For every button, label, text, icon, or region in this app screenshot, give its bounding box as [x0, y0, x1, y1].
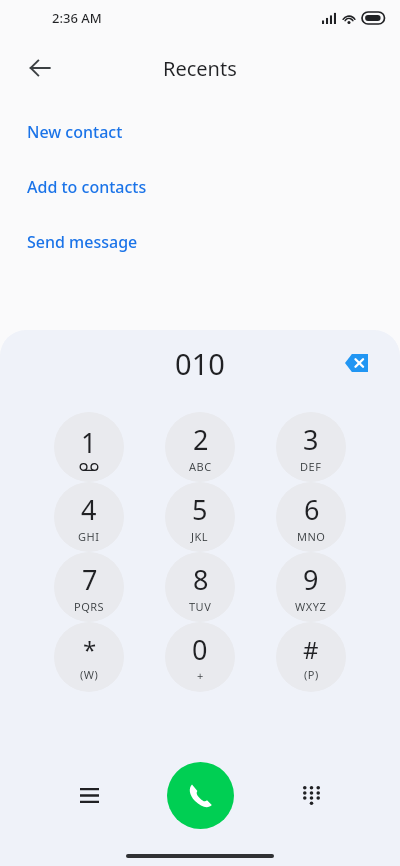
staticText: (P) [304, 667, 319, 682]
button[interactable]: Backspace [334, 341, 378, 385]
button[interactable]: Send message [0, 214, 400, 269]
staticText: 4 [81, 491, 97, 528]
button[interactable]: 8 [165, 552, 235, 622]
staticText: 7 [82, 561, 98, 598]
staticText: Recents [163, 55, 237, 82]
staticText: + [197, 668, 204, 683]
staticText: * [83, 633, 97, 666]
button[interactable]: 7 [54, 552, 124, 622]
staticText: 2 [193, 421, 209, 458]
staticText: 5 [192, 491, 208, 528]
staticText: 8 [193, 561, 209, 598]
staticText: ABC [189, 459, 212, 474]
staticText: GHI [78, 529, 100, 544]
button[interactable]: 0 [165, 622, 235, 692]
button[interactable]: New contact [0, 104, 400, 159]
staticText: Send message [27, 231, 138, 253]
button[interactable]: 1 [54, 412, 124, 482]
staticText: (W) [80, 667, 99, 682]
staticText: 6 [304, 491, 320, 528]
button[interactable]: 2 [165, 412, 235, 482]
button[interactable]: Dialpad [289, 773, 333, 817]
staticText: 9 [303, 561, 319, 598]
staticText: TUV [189, 599, 212, 614]
staticText: JKL [191, 529, 209, 544]
staticText: 2:36 AM [52, 9, 102, 27]
button[interactable]: 4 [54, 482, 124, 552]
staticText: MNO [297, 529, 326, 544]
button[interactable]: Add to contacts [0, 159, 400, 214]
button[interactable]: Back [18, 46, 62, 90]
staticText: 1 [81, 424, 97, 461]
staticText: WXYZ [295, 599, 327, 614]
staticText: PQRS [74, 599, 105, 614]
button[interactable]: 5 [165, 482, 235, 552]
staticText: New contact [27, 121, 123, 143]
staticText: DEF [300, 459, 322, 474]
button[interactable]: Menu [67, 773, 111, 817]
button[interactable]: 6 [276, 482, 346, 552]
button[interactable]: Call [167, 762, 234, 829]
button[interactable]: * [54, 622, 124, 692]
staticText: Add to contacts [27, 176, 147, 198]
staticText: 0 [192, 631, 208, 668]
staticText: 3 [303, 421, 319, 458]
button[interactable]: # [276, 622, 346, 692]
button[interactable]: 3 [276, 412, 346, 482]
staticText: # [303, 633, 319, 666]
button[interactable]: 9 [276, 552, 346, 622]
staticText: 010 [175, 344, 225, 383]
